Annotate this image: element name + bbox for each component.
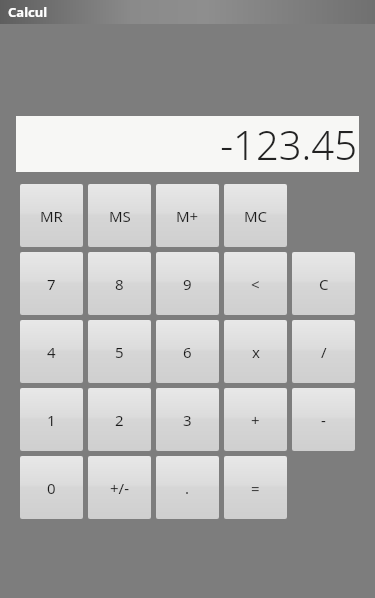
button[interactable]: =: [224, 456, 287, 519]
staticText: M+: [176, 206, 199, 226]
staticText: +: [251, 410, 260, 430]
button[interactable]: C: [292, 252, 355, 315]
staticText: 0: [47, 478, 56, 498]
staticText: .: [185, 478, 190, 498]
button[interactable]: M+: [156, 184, 219, 247]
button[interactable]: 3: [156, 388, 219, 451]
button[interactable]: -: [292, 388, 355, 451]
staticText: 7: [47, 274, 56, 294]
button[interactable]: MR: [20, 184, 83, 247]
button[interactable]: +: [224, 388, 287, 451]
button[interactable]: -123.45: [16, 116, 359, 172]
button[interactable]: MC: [224, 184, 287, 247]
staticText: x: [252, 342, 260, 362]
button[interactable]: /: [292, 320, 355, 383]
button[interactable]: 0: [20, 456, 83, 519]
staticText: 5: [115, 342, 124, 362]
staticText: 1: [47, 410, 56, 430]
button[interactable]: <: [224, 252, 287, 315]
staticText: +/-: [110, 478, 129, 498]
staticText: 9: [183, 274, 192, 294]
staticText: 8: [115, 274, 124, 294]
button[interactable]: MS: [88, 184, 151, 247]
staticText: 2: [115, 410, 124, 430]
button[interactable]: 8: [88, 252, 151, 315]
staticText: -: [321, 410, 326, 430]
staticText: =: [251, 478, 260, 498]
staticText: 3: [183, 410, 192, 430]
button[interactable]: 6: [156, 320, 219, 383]
staticText: Calcul: [8, 3, 48, 21]
staticText: MR: [40, 206, 63, 226]
button[interactable]: x: [224, 320, 287, 383]
button[interactable]: 9: [156, 252, 219, 315]
staticText: MS: [109, 206, 131, 226]
staticText: MC: [244, 206, 268, 226]
button[interactable]: 1: [20, 388, 83, 451]
staticText: 4: [47, 342, 56, 362]
button[interactable]: 2: [88, 388, 151, 451]
button[interactable]: 7: [20, 252, 83, 315]
button[interactable]: +/-: [88, 456, 151, 519]
button[interactable]: 4: [20, 320, 83, 383]
button[interactable]: .: [156, 456, 219, 519]
staticText: 6: [183, 342, 192, 362]
button[interactable]: 5: [88, 320, 151, 383]
staticText: <: [251, 274, 260, 294]
staticText: C: [319, 274, 329, 294]
staticText: -123.45: [220, 117, 357, 171]
staticText: /: [321, 342, 327, 362]
